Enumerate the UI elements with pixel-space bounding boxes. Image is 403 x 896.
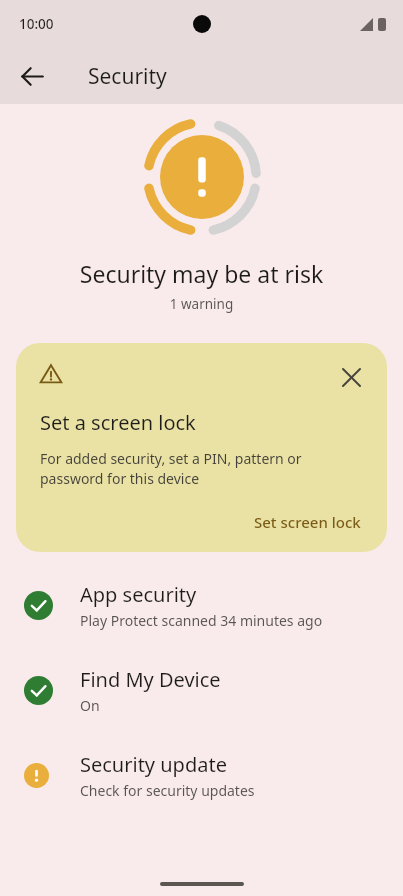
staticText: Security may be at risk [0, 258, 403, 289]
staticText: Security update [80, 751, 227, 778]
button[interactable]: Dismiss [16, 343, 387, 552]
staticText: 10:00 [19, 15, 54, 33]
staticText: Play Protect scanned 34 minutes ago [80, 611, 323, 630]
staticText: On [80, 696, 100, 715]
staticText: Check for security updates [80, 781, 255, 800]
button[interactable]: Back [8, 52, 56, 100]
staticText: Set a screen lock [40, 409, 196, 436]
staticText: For added security, set a PIN, pattern o… [40, 449, 345, 488]
staticText: App security [80, 581, 197, 608]
button[interactable]: Dismiss [331, 357, 371, 397]
staticText: Set screen lock [254, 512, 361, 532]
staticText: Find My Device [80, 666, 221, 693]
button[interactable]: Set screen lock [244, 506, 371, 538]
button[interactable]: Security update [0, 751, 403, 800]
button[interactable]: Find My Device [0, 666, 403, 715]
button[interactable]: App security [0, 581, 403, 630]
staticText: 1 warning [0, 295, 403, 313]
staticText: Security [88, 62, 167, 91]
